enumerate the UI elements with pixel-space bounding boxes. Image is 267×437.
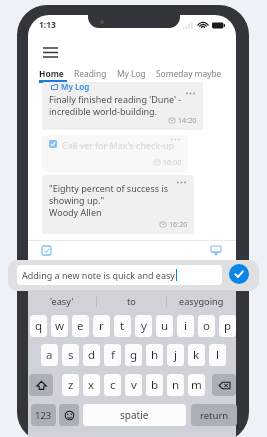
staticText: My Log [117, 68, 146, 79]
staticText: incredible world-building. [49, 105, 158, 117]
button[interactable]: Confirm [229, 264, 249, 284]
button[interactable]: f [104, 344, 121, 366]
staticText: 14:20 [178, 115, 197, 125]
staticText: y [141, 318, 147, 334]
staticText: Home [39, 68, 64, 79]
button[interactable]: c [104, 374, 121, 396]
button[interactable]: More options [42, 135, 188, 172]
staticText: l [216, 347, 219, 363]
button[interactable]: Someday maybe [156, 66, 222, 80]
button[interactable]: 123 [31, 404, 56, 426]
button[interactable]: p [219, 315, 236, 337]
staticText: Finally finished reading 'Dune' - [49, 93, 182, 105]
button[interactable]: emoji [59, 404, 79, 426]
staticText: 123 [35, 409, 52, 422]
staticText: showing up." [49, 194, 105, 206]
button[interactable]: Adding a new note is quick and easy [17, 265, 222, 285]
button[interactable]: More options [42, 175, 194, 234]
button[interactable]: x [83, 374, 100, 396]
button[interactable]: return [191, 404, 237, 426]
staticText: n [172, 377, 180, 393]
button[interactable]: r [93, 315, 110, 337]
button[interactable]: Reading [74, 66, 107, 80]
staticText: g [130, 347, 138, 363]
button[interactable]: l [209, 344, 226, 366]
staticText: h [151, 347, 159, 363]
staticText: "Eighty percent of success is [49, 182, 169, 194]
button[interactable]: g [125, 344, 142, 366]
staticText: p [224, 318, 232, 334]
button[interactable]: v [125, 374, 142, 396]
button[interactable]: z [62, 374, 79, 396]
staticText: q [35, 318, 43, 334]
staticText: r [99, 318, 104, 334]
staticText: to [127, 295, 136, 308]
button[interactable]: u [156, 315, 173, 337]
button[interactable]: m [188, 374, 205, 396]
staticText: x [88, 377, 95, 393]
staticText: z [68, 377, 74, 393]
staticText: 16:20 [169, 219, 188, 229]
button[interactable]: e [72, 315, 89, 337]
button[interactable]: i [177, 315, 194, 337]
staticText: w [55, 318, 65, 334]
button[interactable]: More options [166, 135, 184, 145]
staticText: easygoing [179, 295, 224, 308]
button[interactable]: a [41, 344, 58, 366]
staticText: Woody Allen [49, 206, 102, 218]
button[interactable]: q [30, 315, 47, 337]
button[interactable]: More options [172, 177, 190, 188]
staticText: m [191, 377, 202, 393]
button[interactable]: shift [29, 374, 53, 396]
button[interactable]: del [212, 374, 236, 396]
button[interactable]: s [62, 344, 79, 366]
staticText: v [131, 377, 137, 393]
button[interactable]: y [135, 315, 152, 337]
button[interactable]: Home [39, 66, 64, 80]
button[interactable]: My Log [117, 66, 146, 80]
staticText: 'easy' [50, 295, 74, 308]
staticText: b [151, 377, 159, 393]
staticText: k [193, 347, 200, 363]
button[interactable]: Menu [36, 40, 64, 64]
button[interactable]: d [83, 344, 100, 366]
button[interactable]: k [188, 344, 205, 366]
staticText: Reading [74, 68, 107, 79]
button[interactable]: t [114, 315, 131, 337]
button[interactable]: to [97, 290, 166, 312]
button[interactable]: Add task [38, 242, 54, 258]
staticText: spatie [120, 408, 149, 422]
staticText: 1:13 [39, 19, 56, 31]
staticText: e [77, 318, 84, 334]
staticText: My Log [61, 81, 90, 92]
staticText: Adding a new note is quick and easy [22, 269, 175, 281]
button[interactable]: 'easy' [28, 290, 96, 312]
staticText: i [184, 318, 187, 334]
button[interactable]: h [146, 344, 163, 366]
staticText: d [88, 347, 96, 363]
staticText: f [111, 347, 115, 363]
staticText: Call vet for Max's check-up [62, 139, 175, 151]
staticText: a [46, 347, 53, 363]
button[interactable]: j [167, 344, 184, 366]
button[interactable]: o [198, 315, 215, 337]
button[interactable]: easygoing [167, 290, 236, 312]
button[interactable]: More options [42, 82, 203, 130]
staticText: s [68, 347, 74, 363]
button[interactable]: n [167, 374, 184, 396]
staticText: t [120, 318, 125, 334]
staticText: 16:00 [163, 157, 182, 167]
button[interactable]: w [51, 315, 68, 337]
staticText: j [174, 347, 177, 363]
staticText: u [161, 318, 169, 334]
button[interactable]: spatie [83, 404, 186, 426]
button[interactable]: More options [181, 88, 199, 99]
staticText: Someday maybe [156, 68, 222, 79]
button[interactable]: Hide keyboard [208, 242, 224, 258]
button[interactable]: b [146, 374, 163, 396]
staticText: o [203, 318, 210, 334]
staticText: return [200, 409, 229, 422]
staticText: c [110, 377, 116, 393]
